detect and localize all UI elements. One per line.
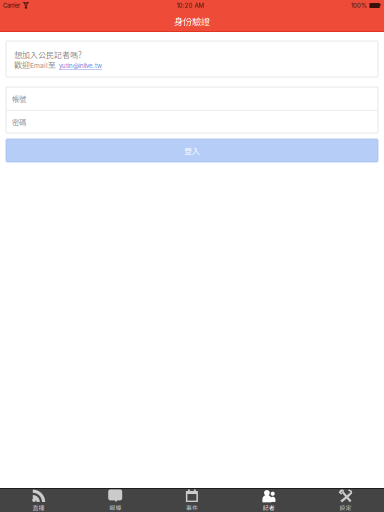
staticText: 事件: [186, 503, 198, 512]
staticText: 想加入公民記者嗎?: [14, 49, 82, 60]
staticText: 密碼: [12, 117, 26, 127]
button[interactable]: 事件: [154, 488, 230, 512]
button[interactable]: 報導: [77, 488, 154, 512]
staticText: yutin@inlive.tw: [59, 62, 102, 69]
staticText: 直播: [32, 503, 44, 512]
staticText: 至: [48, 59, 56, 70]
staticText: 報導: [109, 503, 121, 512]
button[interactable]: 記者: [230, 488, 307, 512]
staticText: Carrier: [3, 2, 20, 9]
staticText: 記者: [263, 503, 275, 512]
staticText: 帳號: [12, 93, 26, 104]
button[interactable]: 登入: [6, 139, 378, 162]
staticText: 10:20 AM: [177, 2, 204, 9]
staticText: 登入: [184, 145, 200, 156]
staticText: 設定: [340, 503, 352, 512]
staticText: 100%: [351, 2, 367, 9]
button[interactable]: 帳號: [6, 87, 378, 110]
button[interactable]: 設定: [307, 488, 384, 512]
staticText: Email: [30, 61, 48, 70]
staticText: 身份驗證: [174, 14, 210, 28]
button[interactable]: yutin@inlive.tw: [59, 62, 102, 69]
staticText: 歡迎: [14, 59, 30, 70]
button[interactable]: 直播: [0, 488, 77, 512]
button[interactable]: 密碼: [6, 111, 378, 133]
